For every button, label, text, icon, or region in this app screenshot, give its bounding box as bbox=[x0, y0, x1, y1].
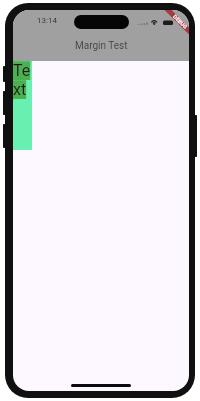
staticText: Text bbox=[13, 61, 32, 99]
button[interactable]: Margin Test bbox=[13, 31, 189, 61]
button[interactable]: Text bbox=[13, 61, 32, 150]
staticText: DEBUG bbox=[172, 13, 189, 30]
staticText: Margin Test bbox=[75, 40, 128, 52]
staticText: 13:14 bbox=[37, 16, 57, 25]
